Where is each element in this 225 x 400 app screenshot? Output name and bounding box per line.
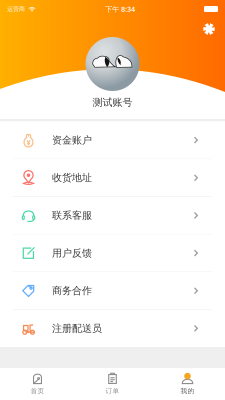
button[interactable]: 订单 [75, 368, 150, 400]
staticText: 收货地址 [52, 171, 92, 184]
button[interactable]: 收货地址 [0, 159, 225, 196]
button[interactable]: Settings [198, 18, 220, 40]
button[interactable]: 用户反馈 [0, 234, 225, 271]
button[interactable]: 商务合作 [0, 272, 225, 309]
staticText: 测试账号 [92, 96, 132, 109]
button[interactable]: 首页 [0, 368, 75, 400]
staticText: 下午 8:34 [105, 4, 135, 14]
staticText: 运营商 [7, 5, 25, 13]
button[interactable]: 我的 [150, 368, 225, 400]
staticText: 注册配送员 [52, 322, 102, 335]
button[interactable]: 联系客服 [0, 197, 225, 234]
button[interactable]: 注册配送员 [0, 310, 225, 347]
button[interactable]: 资金账户 [0, 122, 225, 159]
staticText: 首页 [30, 387, 44, 395]
staticText: 联系客服 [52, 209, 92, 222]
staticText: 订单 [105, 387, 119, 395]
staticText: 我的 [180, 387, 194, 395]
staticText: 资金账户 [52, 134, 92, 146]
staticText: 商务合作 [52, 284, 92, 297]
staticText: 用户反馈 [52, 247, 92, 259]
